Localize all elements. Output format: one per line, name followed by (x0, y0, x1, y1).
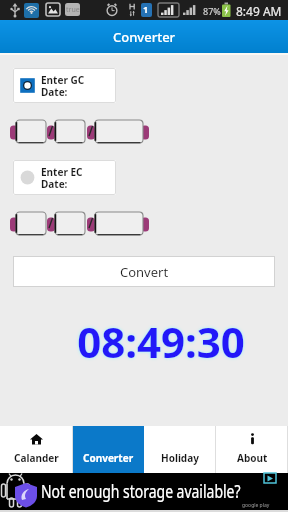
other: Ad choices (264, 473, 276, 483)
staticText: Holiday (161, 451, 199, 465)
button[interactable]: About (216, 426, 288, 473)
staticText: google play (242, 502, 270, 509)
button[interactable]: Enter GC Date: (13, 68, 116, 103)
staticText: Calander (14, 451, 59, 465)
staticText: true (66, 5, 80, 15)
staticText: 1 (143, 3, 149, 15)
button[interactable]: Holiday (144, 426, 216, 473)
staticText: 87% (203, 5, 221, 17)
button[interactable] (0, 119, 288, 144)
button[interactable]: Convert (13, 256, 275, 287)
button[interactable] (0, 211, 288, 236)
button[interactable]: Not enough storage available? (0, 473, 288, 510)
staticText: Converter (83, 451, 134, 465)
staticText: 08:49:30 (17, 313, 288, 370)
staticText: Enter EC Date: (41, 165, 83, 191)
staticText: Convert (120, 263, 169, 281)
button[interactable]: Enter EC Date: (13, 160, 116, 195)
staticText: About (237, 451, 268, 465)
staticText: 8:49 AM (236, 3, 282, 19)
staticText: Enter GC Date: (41, 73, 85, 99)
button[interactable]: Calander (0, 426, 73, 473)
button[interactable]: Converter (73, 426, 144, 473)
staticText: Converter (113, 28, 176, 46)
staticText: Not enough storage available? (41, 479, 241, 504)
